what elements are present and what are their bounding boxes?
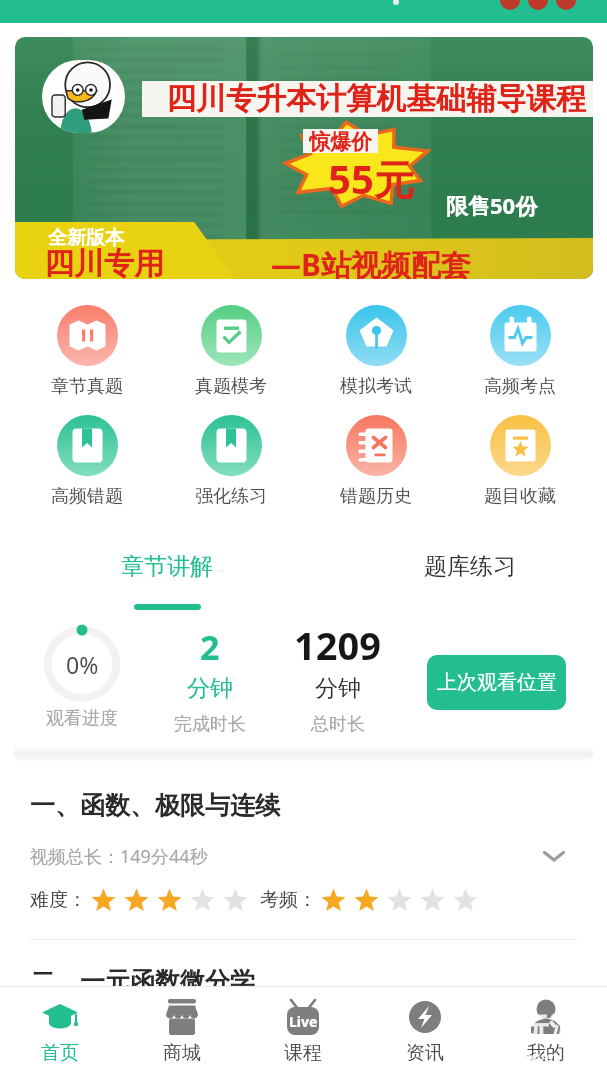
- button[interactable]: Live: [248, 994, 358, 1065]
- staticText: 0%: [66, 649, 99, 680]
- staticText: 我的: [527, 1041, 565, 1065]
- staticText: 首页: [41, 1041, 79, 1065]
- button[interactable]: 错题历史: [321, 411, 431, 508]
- staticText: 总时长: [311, 713, 365, 736]
- staticText: 四川专升本计算机基础辅导课程: [166, 80, 586, 116]
- button[interactable]: 高频错题: [32, 411, 142, 508]
- staticText: 分钟: [315, 674, 361, 703]
- button[interactable]: 章节讲解: [112, 544, 222, 610]
- button[interactable]: 模拟考试: [321, 301, 431, 398]
- button[interactable]: 首页: [5, 994, 115, 1065]
- staticText: Live: [289, 1012, 318, 1031]
- other: Expand: [537, 839, 571, 873]
- button[interactable]: 资讯: [370, 994, 480, 1065]
- staticText: —B站视频配套: [271, 244, 471, 279]
- staticText: 视频总长：149分44秒: [30, 844, 208, 869]
- button[interactable]: 题目收藏: [465, 411, 575, 508]
- staticText: 完成时长: [174, 713, 246, 736]
- staticText: 章节讲解: [121, 552, 213, 581]
- button[interactable]: 高频考点: [465, 301, 575, 398]
- staticText: 惊爆价: [309, 129, 372, 153]
- staticText: 上次观看位置: [437, 670, 557, 695]
- staticText: 真题模考: [195, 375, 267, 398]
- staticText: 考频：: [260, 888, 317, 912]
- staticText: 题库练习: [424, 552, 516, 581]
- button[interactable]: 章节真题: [32, 301, 142, 398]
- staticText: 全新版本: [48, 226, 124, 250]
- button[interactable]: 我的: [491, 994, 601, 1065]
- staticText: 题目收藏: [484, 485, 556, 508]
- button[interactable]: 题库练习: [415, 544, 525, 581]
- staticText: 强化练习: [195, 485, 267, 508]
- staticText: 资讯: [406, 1041, 444, 1065]
- button[interactable]: 四川专升本计算机基础辅导课程: [15, 37, 593, 279]
- staticText: 模拟考试: [340, 375, 412, 398]
- staticText: 仍玩游戏: [487, 1010, 607, 1049]
- staticText: 章节真题: [51, 375, 123, 398]
- staticText: Rengwan Games: [489, 1046, 607, 1068]
- button[interactable]: 商城: [127, 994, 237, 1065]
- staticText: 一、函数、极限与连续: [30, 790, 280, 821]
- button[interactable]: 强化练习: [176, 411, 286, 508]
- staticText: 二、一元函数微分学: [30, 966, 255, 997]
- staticText: 商城: [163, 1041, 201, 1065]
- staticText: 55元: [328, 151, 414, 206]
- staticText: 分钟: [187, 674, 233, 703]
- button[interactable]: 二、一元函数微分学: [0, 940, 607, 997]
- staticText: 限售50份: [446, 190, 538, 220]
- button[interactable]: 一、函数、极限与连续: [0, 760, 607, 939]
- staticText: 高频考点: [484, 375, 556, 398]
- staticText: 2: [200, 624, 220, 670]
- button[interactable]: 上次观看位置: [427, 655, 566, 710]
- staticText: 课程: [284, 1041, 322, 1065]
- staticText: 1209: [294, 619, 381, 671]
- staticText: 观看进度: [46, 707, 118, 730]
- staticText: 错题历史: [340, 485, 412, 508]
- button[interactable]: 真题模考: [176, 301, 286, 398]
- staticText: 难度：: [30, 888, 87, 912]
- staticText: 高频错题: [51, 485, 123, 508]
- staticText: 四川专用: [44, 245, 164, 279]
